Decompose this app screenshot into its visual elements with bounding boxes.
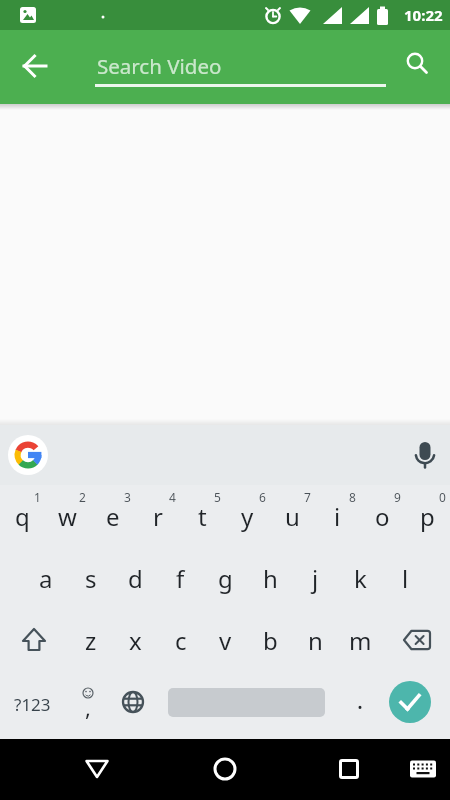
button[interactable]: ,: [65, 671, 110, 733]
button[interactable]: [395, 41, 439, 85]
staticText: t: [198, 500, 207, 533]
staticText: o: [375, 500, 390, 533]
staticText: g: [218, 562, 233, 595]
staticText: s: [85, 562, 97, 595]
staticText: 6: [259, 489, 266, 505]
button[interactable]: u: [270, 485, 315, 547]
staticText: 3: [124, 489, 131, 505]
staticText: q: [15, 500, 30, 533]
button[interactable]: [110, 671, 155, 733]
staticText: 4: [169, 489, 176, 505]
button[interactable]: n: [293, 609, 338, 671]
button[interactable]: ?123: [0, 671, 65, 733]
staticText: 0: [439, 489, 446, 505]
button[interactable]: v: [203, 609, 248, 671]
button[interactable]: k: [338, 547, 383, 609]
button[interactable]: [383, 609, 450, 671]
button[interactable]: [327, 747, 371, 791]
staticText: u: [285, 500, 300, 533]
staticText: p: [420, 500, 435, 533]
button[interactable]: z: [68, 609, 113, 671]
button[interactable]: d: [113, 547, 158, 609]
button[interactable]: w: [45, 485, 90, 547]
staticText: l: [402, 562, 409, 595]
button[interactable]: b: [248, 609, 293, 671]
staticText: k: [354, 562, 367, 595]
button[interactable]: [13, 44, 57, 88]
button[interactable]: s: [68, 547, 113, 609]
button[interactable]: [155, 671, 337, 733]
button[interactable]: a: [23, 547, 68, 609]
button[interactable]: l: [383, 547, 427, 609]
staticText: f: [176, 562, 185, 595]
staticText: m: [349, 624, 372, 657]
staticText: 10:22: [404, 5, 443, 25]
button[interactable]: [203, 747, 247, 791]
button[interactable]: h: [248, 547, 293, 609]
button[interactable]: e: [90, 485, 135, 547]
staticText: 8: [349, 489, 356, 505]
button[interactable]: i: [315, 485, 360, 547]
staticText: a: [39, 562, 53, 595]
staticText: 7: [304, 489, 311, 505]
button[interactable]: [402, 748, 444, 790]
staticText: x: [129, 624, 142, 657]
button[interactable]: Search Video: [95, 52, 386, 87]
staticText: n: [308, 624, 323, 657]
staticText: z: [85, 624, 97, 657]
staticText: r: [153, 500, 163, 533]
button[interactable]: q: [0, 485, 45, 547]
button[interactable]: r: [135, 485, 180, 547]
staticText: v: [219, 624, 232, 657]
staticText: c: [175, 624, 187, 657]
staticText: 1: [34, 489, 41, 505]
staticText: d: [128, 562, 143, 595]
staticText: Search Video: [97, 52, 222, 80]
staticText: 2: [79, 489, 86, 505]
staticText: i: [334, 500, 341, 533]
button[interactable]: m: [338, 609, 383, 671]
button[interactable]: .: [337, 671, 382, 733]
button[interactable]: [382, 671, 450, 733]
button[interactable]: t: [180, 485, 225, 547]
button[interactable]: x: [113, 609, 158, 671]
button[interactable]: [0, 609, 68, 671]
staticText: ,: [85, 692, 91, 722]
staticText: e: [106, 500, 120, 533]
button[interactable]: j: [293, 547, 338, 609]
button[interactable]: [75, 747, 119, 791]
button[interactable]: c: [158, 609, 203, 671]
button[interactable]: [8, 435, 48, 475]
staticText: h: [263, 562, 278, 595]
staticText: .: [357, 685, 363, 715]
staticText: 9: [394, 489, 401, 505]
staticText: 5: [214, 489, 221, 505]
staticText: j: [312, 562, 319, 595]
staticText: ?123: [14, 693, 51, 716]
button[interactable]: y: [225, 485, 270, 547]
button[interactable]: [403, 433, 447, 477]
button[interactable]: f: [158, 547, 203, 609]
button[interactable]: p: [405, 485, 450, 547]
button[interactable]: g: [203, 547, 248, 609]
button[interactable]: o: [360, 485, 405, 547]
staticText: w: [58, 500, 77, 533]
staticText: b: [263, 624, 278, 657]
staticText: y: [241, 500, 254, 533]
